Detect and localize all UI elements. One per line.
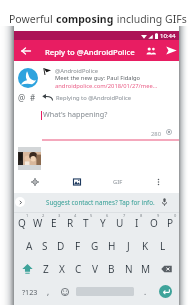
staticText: O [150, 216, 158, 230]
button[interactable]: , [41, 280, 56, 303]
button[interactable]: K [137, 234, 154, 257]
button[interactable]: GIF [97, 171, 138, 193]
button[interactable]: Q [14, 211, 30, 234]
button[interactable]: Photo [56, 171, 97, 193]
staticText: L [160, 239, 166, 253]
button[interactable]: Avatar [18, 68, 38, 88]
staticText: T [83, 216, 89, 230]
staticText: 7 [123, 213, 126, 218]
staticText: 8 [140, 213, 143, 218]
staticText: A [26, 239, 33, 253]
staticText: S [42, 239, 48, 253]
staticText: H [108, 239, 116, 253]
staticText: M [141, 262, 151, 276]
staticText: K [142, 239, 149, 253]
button[interactable]: E [46, 211, 62, 234]
staticText: @AndroidPolice [55, 67, 98, 75]
button[interactable]: Emoji [57, 280, 72, 303]
button[interactable]: Enter [152, 281, 179, 302]
staticText: , [47, 286, 50, 297]
button[interactable]: Backspace [154, 257, 179, 280]
staticText: 5 [90, 213, 93, 218]
staticText: 2 [42, 213, 45, 218]
button[interactable]: Back [17, 40, 35, 61]
staticText: Reply to @AndroidPolice [45, 47, 135, 57]
staticText: I [135, 216, 139, 230]
button[interactable]: M [137, 257, 154, 280]
button[interactable]: Suggest contact names? Tap for info. [46, 198, 155, 207]
staticText: B [108, 262, 115, 276]
button[interactable]: D [53, 234, 69, 257]
button[interactable]: T [78, 211, 94, 234]
staticText: Meet the new guy: Paul Fidalgo [55, 74, 141, 82]
staticText: F [75, 239, 81, 253]
button[interactable]: W [30, 211, 46, 234]
button[interactable]: Shift [14, 257, 38, 280]
staticText: 3 [58, 213, 61, 218]
staticText: @ [18, 92, 26, 103]
button[interactable]: G [86, 234, 103, 257]
button[interactable]: X [54, 257, 70, 280]
button[interactable]: A [21, 234, 37, 257]
staticText: GIF [113, 178, 123, 186]
button[interactable]: I [128, 211, 145, 234]
button[interactable]: O [145, 211, 162, 234]
staticText: D [57, 239, 65, 253]
staticText: R [67, 216, 74, 230]
staticText: U [116, 216, 124, 230]
button[interactable]: F [69, 234, 86, 257]
staticText: ?123 [22, 287, 38, 297]
staticText: C [75, 262, 82, 276]
staticText: Replying to @AndroidPolice [56, 94, 132, 102]
button[interactable]: Voice input [162, 198, 167, 206]
staticText: 280 [151, 130, 161, 138]
staticText: Powerful [9, 12, 56, 26]
button[interactable]: Y [94, 211, 111, 234]
button[interactable]: Expand suggestions [15, 197, 25, 207]
staticText: 4 [74, 213, 77, 218]
staticText: 10:44 [160, 32, 176, 40]
button[interactable]: R [62, 211, 78, 234]
button[interactable]: Z [38, 257, 54, 280]
button[interactable]: Send [162, 40, 180, 61]
staticText: G [91, 239, 99, 253]
button[interactable]: U [111, 211, 128, 234]
staticText: # [30, 92, 36, 103]
button[interactable]: S [37, 234, 53, 257]
button[interactable]: Add people [142, 40, 160, 61]
button[interactable]: V [86, 257, 103, 280]
staticText: N [125, 262, 133, 276]
staticText: P [167, 216, 174, 230]
staticText: composing [56, 12, 114, 26]
button[interactable]: Symbols [14, 280, 46, 303]
button[interactable]: H [103, 234, 120, 257]
staticText: 6 [106, 213, 109, 218]
button[interactable]: . [138, 280, 153, 303]
button[interactable]: P [162, 211, 179, 234]
staticText: Z [43, 262, 49, 276]
staticText: including GIFs [114, 12, 187, 26]
staticText: V [92, 262, 98, 276]
button[interactable]: C [70, 257, 86, 280]
staticText: . [144, 286, 147, 297]
button[interactable]: N [120, 257, 137, 280]
button[interactable]: More options [138, 171, 179, 193]
button[interactable]: L [154, 234, 171, 257]
staticText: Y [100, 216, 106, 230]
staticText: 9 [157, 213, 160, 218]
staticText: 0 [174, 213, 177, 218]
staticText: What's happening? [43, 109, 108, 119]
staticText: Q [18, 216, 26, 230]
staticText: E [51, 216, 57, 230]
staticText: J [127, 239, 130, 253]
button[interactable]: Location [14, 171, 56, 193]
button[interactable]: B [103, 257, 120, 280]
staticText: X [59, 262, 65, 276]
staticText: W [33, 216, 43, 230]
staticText: androidpolice.com/2018/01/27/mee... [55, 82, 158, 90]
staticText: 1 [26, 213, 29, 218]
button[interactable]: J [120, 234, 137, 257]
